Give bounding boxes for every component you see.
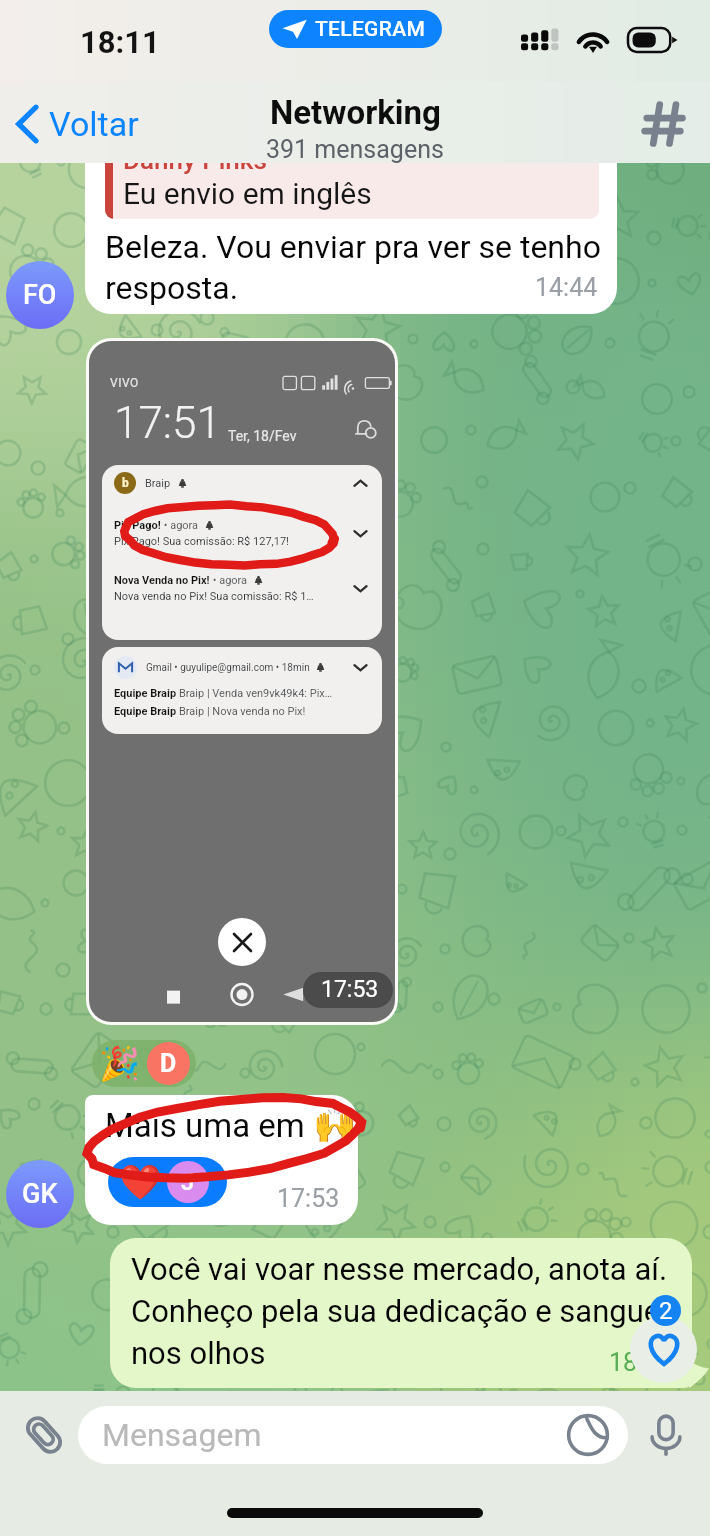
staticText: Equipe Braip <box>114 705 179 718</box>
staticText: 18:11 <box>80 24 160 60</box>
staticText: FO <box>23 279 57 311</box>
staticText: ❤️ <box>119 1162 162 1202</box>
staticText: Mensagem <box>102 1416 262 1454</box>
button[interactable]: Você vai voar nesse mercado, anota aí. C… <box>110 1238 692 1388</box>
button[interactable]: TELEGRAM <box>282 10 426 48</box>
staticText: Beleza. Vou enviar pra ver se tenho resp… <box>105 228 601 307</box>
button[interactable]: Attach <box>16 1407 72 1463</box>
button[interactable]: Voltar <box>11 103 147 145</box>
staticText: TELEGRAM <box>315 17 426 42</box>
staticText: Voltar <box>49 104 139 144</box>
staticText: 17:51 <box>114 397 221 449</box>
staticText: D <box>160 1049 177 1078</box>
staticText: 2 <box>659 1297 673 1325</box>
button[interactable]: Mais uma em <box>85 1095 358 1225</box>
staticText: 🙌 <box>313 1105 357 1146</box>
button[interactable]: ❤️ <box>108 1157 227 1207</box>
staticText: Ter, 18/Fev <box>228 428 297 444</box>
staticText: Nova Venda no Pix! <box>114 574 210 587</box>
button[interactable]: Danny Pinks <box>85 133 617 314</box>
staticText: 18:11 <box>609 1348 672 1377</box>
button[interactable]: 🎉 <box>92 1040 196 1087</box>
button[interactable]: Group info <box>634 95 692 153</box>
staticText: b <box>122 476 129 490</box>
staticText: 391 mensagens <box>266 135 444 164</box>
button[interactable]: VIVO <box>89 341 395 1022</box>
staticText: Braip | Venda ven9vk49k4: Pix… <box>179 687 333 700</box>
staticText: 17:53 <box>321 976 379 1003</box>
staticText: VIVO <box>110 376 139 390</box>
button[interactable]: Mensagem <box>78 1406 628 1464</box>
staticText: Eu envio em inglês <box>123 176 372 211</box>
button[interactable]: Like <box>630 1316 697 1383</box>
staticText: Mais uma em <box>105 1106 305 1145</box>
staticText: Você vai voar nesse mercado, anota aí. C… <box>131 1251 676 1372</box>
staticText: Equipe Braip <box>114 687 179 700</box>
button[interactable]: Voice message <box>638 1407 694 1463</box>
staticText: Nova venda no Pix! Sua comissão: R$ 1… <box>114 590 314 603</box>
staticText: J <box>181 1168 195 1196</box>
staticText: 14:44 <box>535 273 598 302</box>
button[interactable]: FO <box>6 261 74 329</box>
staticText: 17:53 <box>277 1184 340 1213</box>
staticText: 🎉 <box>99 1044 141 1083</box>
staticText: • agora <box>161 519 199 532</box>
button[interactable]: Close <box>218 918 266 966</box>
staticText: Pix Pago! <box>114 519 161 532</box>
button[interactable]: GK <box>6 1160 74 1228</box>
staticText: Braip | Nova venda no Pix! <box>179 705 306 718</box>
button[interactable]: Stickers <box>566 1413 610 1457</box>
staticText: Danny Pinks <box>123 145 267 175</box>
staticText: Networking <box>270 93 441 132</box>
staticText: Braip <box>145 477 171 490</box>
staticText: Gmail • guyulipe@gmail.com • 18min <box>146 662 310 674</box>
staticText: GK <box>22 1178 58 1210</box>
staticText: • agora <box>210 574 248 587</box>
staticText: Pix Pago! Sua comissão: R$ 127,17! <box>114 535 289 548</box>
